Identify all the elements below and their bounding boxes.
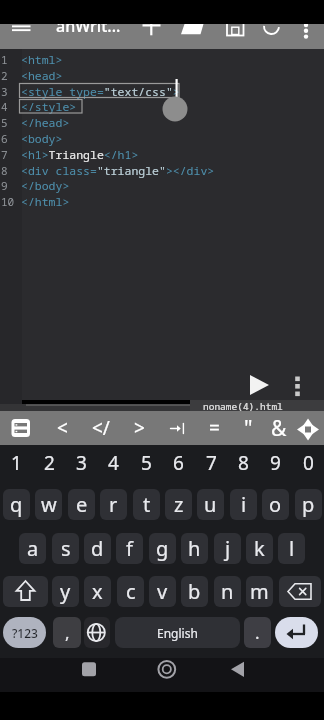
button[interactable]: [220, 24, 250, 49]
button[interactable]: b: [181, 576, 208, 607]
button[interactable]: [294, 24, 320, 49]
staticText: p: [302, 491, 315, 518]
button[interactable]: f: [116, 533, 143, 564]
button[interactable]: [256, 24, 286, 49]
staticText: 4: [108, 450, 119, 476]
button[interactable]: 2: [36, 449, 62, 477]
staticText: r: [109, 491, 118, 518]
staticText: &: [271, 414, 287, 443]
staticText: 10: [1, 194, 15, 209]
button[interactable]: ,: [53, 617, 81, 648]
staticText: e: [76, 491, 88, 518]
button[interactable]: u: [197, 489, 224, 520]
staticText: </html>: [21, 194, 70, 210]
staticText: <head>: [21, 68, 63, 84]
staticText: 6: [1, 131, 8, 146]
staticText: y: [60, 578, 71, 605]
staticText: 9: [270, 450, 281, 476]
button[interactable]: n: [214, 576, 241, 607]
button[interactable]: j: [214, 533, 241, 564]
button[interactable]: [70, 658, 108, 692]
button[interactable]: l: [278, 533, 305, 564]
button[interactable]: o: [262, 489, 289, 520]
button[interactable]: [296, 413, 324, 443]
button[interactable]: z: [165, 489, 192, 520]
staticText: d: [91, 535, 104, 562]
staticText: <html>: [21, 52, 63, 68]
button[interactable]: h: [181, 533, 208, 564]
button[interactable]: q: [3, 489, 30, 520]
button[interactable]: [279, 576, 321, 607]
button[interactable]: 5: [133, 449, 159, 477]
button[interactable]: r: [100, 489, 127, 520]
button[interactable]: =: [201, 413, 227, 443]
button[interactable]: <: [49, 413, 75, 443]
button[interactable]: >: [126, 413, 152, 443]
button[interactable]: 9: [262, 449, 288, 477]
button[interactable]: &: [266, 413, 292, 443]
staticText: o: [269, 491, 282, 518]
button[interactable]: [162, 413, 190, 443]
button[interactable]: [148, 658, 186, 692]
staticText: noname(4).html: [203, 400, 283, 413]
button[interactable]: [136, 24, 166, 49]
button[interactable]: 7: [198, 449, 224, 477]
staticText: anWrit...: [56, 15, 121, 37]
staticText: </body>: [21, 178, 70, 194]
staticText: 5: [141, 450, 152, 476]
button[interactable]: k: [246, 533, 273, 564]
staticText: c: [126, 578, 136, 605]
staticText: .: [255, 621, 260, 644]
staticText: h: [188, 535, 201, 562]
staticText: <style type="text/css">: [21, 84, 180, 100]
button[interactable]: </: [88, 413, 114, 443]
button[interactable]: 6: [165, 449, 191, 477]
button[interactable]: y: [52, 576, 79, 607]
button[interactable]: 1: [3, 449, 29, 477]
button[interactable]: .: [244, 617, 271, 648]
button[interactable]: 4: [100, 449, 126, 477]
button[interactable]: [288, 370, 308, 400]
button[interactable]: a: [19, 533, 46, 564]
button[interactable]: c: [117, 576, 144, 607]
button[interactable]: i: [230, 489, 257, 520]
button[interactable]: [275, 617, 318, 648]
button[interactable]: d: [84, 533, 111, 564]
button[interactable]: 3: [68, 449, 94, 477]
staticText: g: [156, 535, 169, 562]
staticText: 8: [238, 450, 249, 476]
button[interactable]: p: [295, 489, 322, 520]
staticText: </: [92, 415, 110, 441]
button[interactable]: m: [246, 576, 273, 607]
staticText: 5: [1, 115, 8, 130]
button[interactable]: [6, 24, 40, 49]
button[interactable]: e: [68, 489, 95, 520]
staticText: k: [254, 535, 265, 562]
staticText: ": [244, 414, 253, 443]
staticText: j: [225, 535, 231, 562]
button[interactable]: [176, 24, 206, 49]
staticText: i: [241, 491, 247, 518]
button[interactable]: g: [149, 533, 176, 564]
staticText: ,: [65, 621, 70, 644]
button[interactable]: [3, 576, 48, 607]
button[interactable]: English: [115, 617, 240, 648]
button[interactable]: [6, 413, 36, 443]
staticText: 8: [1, 163, 8, 178]
staticText: u: [204, 491, 217, 518]
staticText: 0: [303, 450, 314, 476]
button[interactable]: ?123: [3, 617, 46, 648]
button[interactable]: v: [149, 576, 176, 607]
button[interactable]: 0: [295, 449, 321, 477]
staticText: f: [126, 535, 133, 562]
button[interactable]: [84, 617, 110, 648]
button[interactable]: 8: [230, 449, 256, 477]
button[interactable]: ": [235, 413, 261, 443]
button[interactable]: [224, 658, 262, 692]
button[interactable]: s: [52, 533, 79, 564]
staticText: n: [221, 578, 234, 605]
button[interactable]: t: [133, 489, 160, 520]
button[interactable]: x: [84, 576, 111, 607]
button[interactable]: w: [35, 489, 62, 520]
button[interactable]: [244, 370, 274, 400]
